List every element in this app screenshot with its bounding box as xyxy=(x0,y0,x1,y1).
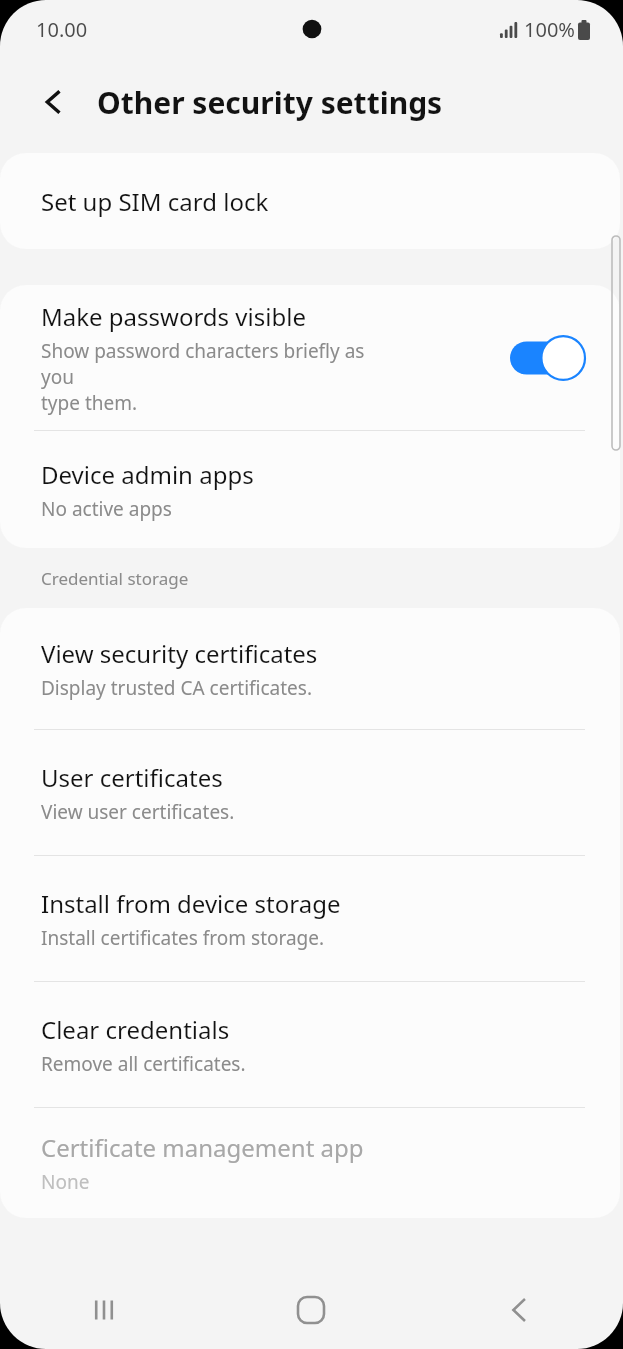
staticText: Display trusted CA certificates. xyxy=(41,675,313,701)
staticText: Other security settings xyxy=(97,82,443,123)
staticText: Certificate management app xyxy=(41,1131,364,1164)
staticText: 100% xyxy=(524,16,575,43)
staticText: User certificates xyxy=(41,761,223,794)
button[interactable]: Back xyxy=(22,71,84,133)
staticText: Remove all certificates. xyxy=(41,1051,246,1077)
button[interactable]: Install from device storage xyxy=(0,856,620,981)
button[interactable]: Make passwords visible xyxy=(0,285,620,430)
staticText: Device admin apps xyxy=(41,458,254,491)
staticText: None xyxy=(41,1169,90,1195)
button[interactable]: Back xyxy=(415,1271,623,1349)
staticText: No active apps xyxy=(41,496,172,522)
staticText: 10.00 xyxy=(36,16,88,43)
button[interactable]: Device admin apps xyxy=(0,431,620,548)
button[interactable]: Recent apps xyxy=(0,1271,207,1349)
button[interactable]: Home xyxy=(207,1271,415,1349)
button[interactable]: User certificates xyxy=(0,730,620,855)
button[interactable]: Set up SIM card lock xyxy=(0,153,620,249)
staticText: Clear credentials xyxy=(41,1013,230,1046)
button[interactable]: Clear credentials xyxy=(0,982,620,1107)
staticText: View user certificates. xyxy=(41,799,235,825)
staticText: Install from device storage xyxy=(41,887,341,920)
staticText: Credential storage xyxy=(41,567,189,590)
staticText: Install certificates from storage. xyxy=(41,925,325,951)
staticText: Make passwords visible xyxy=(41,300,306,333)
staticText: View security certificates xyxy=(41,637,318,670)
button[interactable]: Make passwords visible toggle xyxy=(510,335,586,381)
button[interactable]: Certificate management app xyxy=(0,1108,620,1218)
button[interactable]: View security certificates xyxy=(0,608,620,729)
staticText: Set up SIM card lock xyxy=(41,185,269,218)
staticText: Show password characters briefly as you … xyxy=(41,338,390,416)
